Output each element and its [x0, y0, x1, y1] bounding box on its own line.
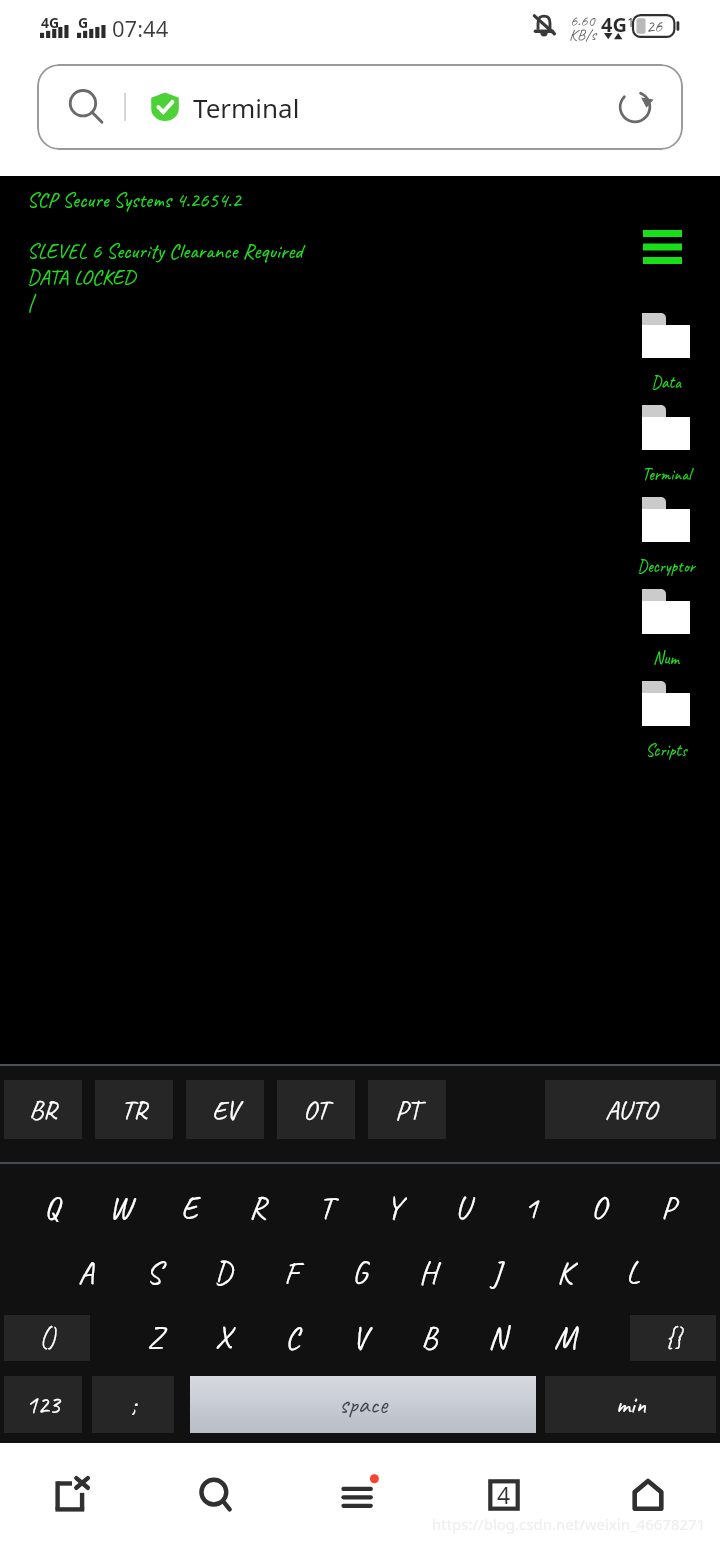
button[interactable]: {}: [630, 1315, 716, 1361]
button[interactable]: Menu: [622, 225, 710, 269]
staticText: X: [215, 1318, 232, 1357]
button[interactable]: T: [294, 1179, 358, 1235]
staticText: 4: [497, 1479, 511, 1510]
button[interactable]: Data: [622, 313, 710, 405]
staticText: H: [419, 1253, 437, 1292]
staticText: 1: [627, 13, 635, 31]
staticText: 6.60: [570, 11, 595, 31]
staticText: Scripts: [645, 740, 687, 761]
staticText: L: [626, 1253, 640, 1292]
staticText: 4G: [601, 11, 627, 38]
staticText: N: [488, 1318, 507, 1357]
staticText: K: [557, 1253, 573, 1292]
button[interactable]: Y: [362, 1179, 426, 1235]
staticText: F: [284, 1253, 299, 1292]
button[interactable]: B: [397, 1309, 461, 1365]
button[interactable]: Q: [20, 1179, 84, 1235]
staticText: 123: [26, 1389, 60, 1421]
staticText: O: [591, 1188, 607, 1227]
button[interactable]: X: [191, 1309, 255, 1365]
staticText: T: [319, 1188, 334, 1227]
staticText: 26: [646, 15, 663, 38]
staticText: https://blog.csdn.net/weixin_46678271: [432, 1514, 706, 1534]
button[interactable]: L: [601, 1244, 665, 1300]
button[interactable]: Terminal: [37, 64, 683, 150]
button[interactable]: R: [225, 1179, 289, 1235]
staticText: W: [109, 1188, 132, 1227]
staticText: Data: [651, 372, 681, 393]
button[interactable]: TR: [95, 1080, 173, 1139]
button[interactable]: A: [54, 1244, 118, 1300]
staticText: S: [146, 1253, 162, 1292]
button[interactable]: Decryptor: [622, 497, 710, 589]
staticText: DATA LOCKED: [27, 264, 136, 290]
button[interactable]: O: [567, 1179, 631, 1235]
button[interactable]: G: [328, 1244, 392, 1300]
staticText: J: [491, 1253, 501, 1292]
staticText: space: [339, 1388, 388, 1421]
staticText: U: [455, 1188, 470, 1227]
staticText: AUTO: [605, 1093, 657, 1127]
button[interactable]: Menu: [324, 1459, 396, 1531]
button[interactable]: Scripts: [622, 681, 710, 773]
button[interactable]: Search: [180, 1459, 252, 1531]
button[interactable]: min: [545, 1376, 716, 1433]
staticText: SLEVEL 6 Security Clearance Required: [27, 238, 303, 264]
staticText: BR: [29, 1093, 57, 1127]
button[interactable]: 123: [4, 1376, 82, 1433]
staticText: min: [616, 1389, 646, 1421]
button[interactable]: S: [122, 1244, 186, 1300]
staticText: Num: [653, 648, 679, 669]
button[interactable]: K: [533, 1244, 597, 1300]
button[interactable]: Close recents: [36, 1459, 108, 1531]
staticText: {}: [665, 1322, 682, 1354]
button[interactable]: EV: [186, 1080, 264, 1139]
button[interactable]: space: [190, 1376, 536, 1433]
staticText: M: [554, 1318, 577, 1357]
staticText: Q: [44, 1188, 60, 1227]
button[interactable]: W: [88, 1179, 152, 1235]
button[interactable]: H: [396, 1244, 460, 1300]
button[interactable]: J: [464, 1244, 528, 1300]
button[interactable]: Z: [123, 1309, 187, 1365]
staticText: Decryptor: [637, 556, 695, 577]
staticText: R: [249, 1188, 266, 1227]
staticText: D: [214, 1253, 232, 1292]
staticText: G: [352, 1253, 368, 1292]
button[interactable]: (): [4, 1315, 90, 1361]
staticText: |: [27, 290, 34, 316]
button[interactable]: 1: [499, 1179, 563, 1235]
button[interactable]: Terminal: [622, 405, 710, 497]
button[interactable]: Recent apps, 4: [468, 1459, 540, 1531]
button[interactable]: Num: [622, 589, 710, 681]
staticText: G: [78, 13, 89, 32]
button[interactable]: ;: [92, 1376, 174, 1433]
button[interactable]: PT: [368, 1080, 446, 1139]
button[interactable]: C: [260, 1309, 324, 1365]
staticText: (): [39, 1322, 56, 1354]
button[interactable]: Home: [612, 1459, 684, 1531]
button[interactable]: N: [465, 1309, 529, 1365]
staticText: P: [661, 1188, 676, 1227]
button[interactable]: P: [636, 1179, 700, 1235]
staticText: A: [78, 1253, 94, 1292]
staticText: Z: [147, 1318, 164, 1357]
staticText: Y: [386, 1188, 402, 1227]
button[interactable]: F: [259, 1244, 323, 1300]
button[interactable]: M: [533, 1309, 597, 1365]
button[interactable]: BR: [4, 1080, 82, 1139]
staticText: PT: [395, 1093, 420, 1127]
button[interactable]: OT: [277, 1080, 355, 1139]
staticText: B: [421, 1318, 438, 1357]
staticText: ;: [131, 1389, 136, 1421]
button[interactable]: D: [191, 1244, 255, 1300]
button[interactable]: E: [157, 1179, 221, 1235]
button[interactable]: V: [328, 1309, 392, 1365]
button[interactable]: U: [430, 1179, 494, 1235]
button[interactable]: AUTO: [545, 1080, 716, 1139]
button[interactable]: Refresh: [608, 80, 662, 134]
staticText: SCP Secure Systems 4.2654.2: [27, 187, 241, 213]
staticText: 1: [524, 1188, 538, 1227]
staticText: KB/s: [569, 25, 596, 45]
staticText: C: [285, 1318, 300, 1357]
